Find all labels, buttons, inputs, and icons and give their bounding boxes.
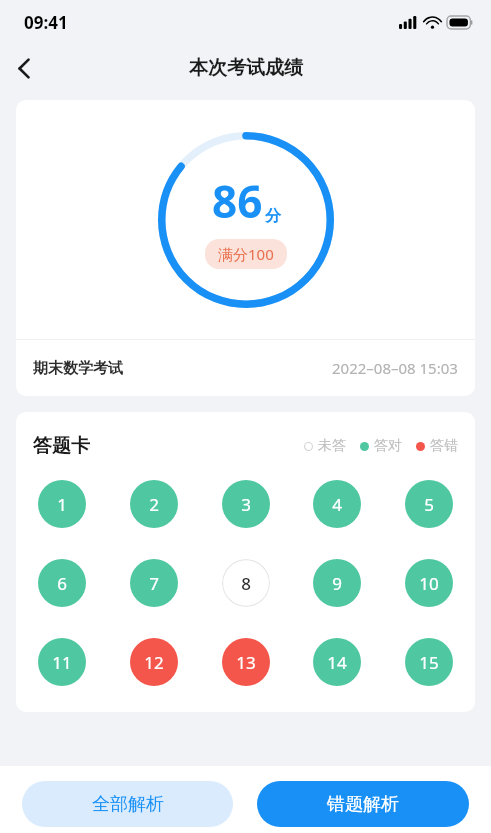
button[interactable]: 6	[38, 559, 86, 607]
staticText: 满分100	[218, 244, 274, 264]
staticText: 错题解析	[327, 793, 399, 816]
button[interactable]: 11	[38, 638, 86, 686]
staticText: 10	[419, 572, 439, 595]
button[interactable]: 10	[405, 559, 453, 607]
staticText: 答错	[430, 437, 458, 455]
staticText: 未答	[318, 437, 346, 455]
button[interactable]: 1	[38, 480, 86, 528]
staticText: 分	[265, 206, 281, 226]
staticText: 2022–08–08 15:03	[332, 358, 458, 378]
staticText: 7	[149, 572, 159, 595]
staticText: 9	[332, 572, 342, 595]
button[interactable]: 8	[222, 559, 270, 607]
staticText: 5	[424, 493, 434, 516]
staticText: 1	[57, 493, 67, 516]
button[interactable]: 14	[313, 638, 361, 686]
staticText: 本次考试成绩	[189, 56, 303, 80]
staticText: 6	[57, 572, 67, 595]
staticText: 14	[327, 651, 347, 674]
button[interactable]: 3	[222, 480, 270, 528]
button[interactable]: 15	[405, 638, 453, 686]
button[interactable]: 13	[222, 638, 270, 686]
staticText: 12	[144, 651, 164, 674]
button[interactable]: 7	[130, 559, 178, 607]
staticText: 4	[332, 493, 342, 516]
button[interactable]: Back	[0, 44, 48, 92]
staticText: 13	[236, 651, 256, 674]
button[interactable]: 12	[130, 638, 178, 686]
button[interactable]: 2	[130, 480, 178, 528]
staticText: 2	[149, 493, 159, 516]
button[interactable]: 9	[313, 559, 361, 607]
staticText: 09:41	[24, 11, 68, 34]
staticText: 3	[241, 493, 251, 516]
button[interactable]: 错题解析	[257, 781, 469, 827]
button[interactable]: 全部解析	[22, 781, 233, 827]
staticText: 11	[52, 651, 72, 674]
button[interactable]: 5	[405, 480, 453, 528]
staticText: 答对	[374, 437, 402, 455]
staticText: 8	[241, 572, 251, 595]
staticText: 全部解析	[92, 793, 164, 816]
staticText: 答题卡	[33, 434, 90, 458]
staticText: 期末数学考试	[33, 359, 123, 378]
button[interactable]: 4	[313, 480, 361, 528]
staticText: 86	[212, 171, 263, 231]
staticText: 15	[419, 651, 439, 674]
